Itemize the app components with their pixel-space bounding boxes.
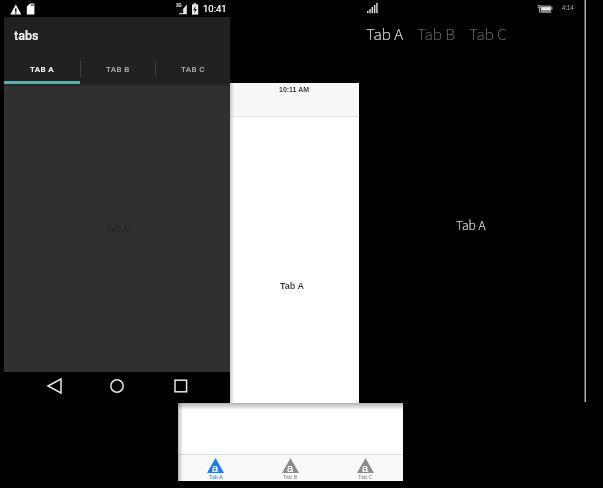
button[interactable]: Tab A	[366, 23, 417, 45]
staticText: 4:14	[562, 2, 574, 12]
staticText: tabs	[14, 28, 39, 43]
button[interactable]: Tab C	[469, 23, 520, 45]
button[interactable]: TAB A	[4, 56, 80, 84]
staticText: a	[212, 462, 219, 474]
staticText: TAB A	[30, 65, 55, 74]
staticText: TAB B	[106, 65, 130, 74]
button[interactable]: Home	[92, 372, 142, 402]
staticText: Tab B	[417, 23, 456, 45]
staticText: 10:11 AM	[279, 86, 310, 94]
staticText: 3G	[176, 3, 182, 8]
button[interactable]: a	[178, 454, 253, 481]
button[interactable]: a	[253, 454, 328, 481]
button[interactable]: TAB B	[80, 56, 155, 84]
staticText: a	[362, 462, 369, 474]
staticText: 10:41	[203, 3, 227, 14]
staticText: Tab A	[106, 224, 129, 235]
staticText: Tab A	[280, 281, 304, 291]
staticText: TAB C	[181, 65, 205, 74]
button[interactable]: TAB C	[155, 56, 230, 84]
staticText: Tab B	[283, 474, 298, 480]
button[interactable]: Recent apps	[156, 372, 206, 402]
staticText: Tab C	[358, 474, 373, 480]
button[interactable]: Tab B	[417, 23, 469, 45]
button[interactable]: Back	[30, 372, 80, 402]
staticText: Tab A	[209, 474, 223, 480]
button[interactable]: a	[328, 454, 403, 481]
staticText: Tab A	[456, 216, 486, 234]
staticText: Tab C	[469, 23, 507, 45]
staticText: a	[287, 462, 294, 474]
staticText: Tab A	[366, 23, 404, 45]
